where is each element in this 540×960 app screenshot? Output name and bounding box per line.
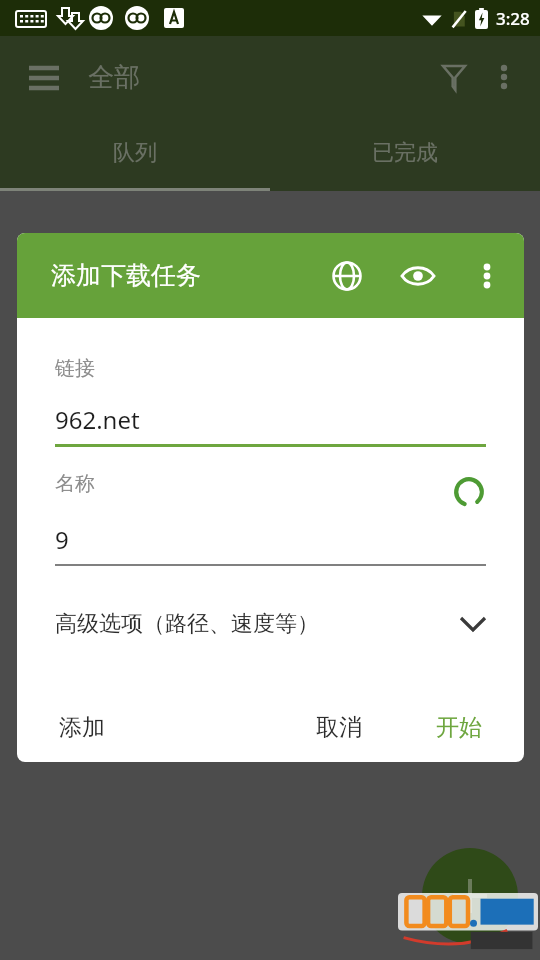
button[interactable]: 962.net <box>55 403 486 447</box>
button[interactable]: 添加 <box>43 703 121 752</box>
button[interactable]: Filter <box>428 51 480 103</box>
staticText: 高级选项（路径、速度等） <box>55 610 319 638</box>
button[interactable]: 开始 <box>420 703 498 752</box>
button[interactable]: 9 <box>55 523 486 566</box>
button[interactable]: 队列 <box>0 118 270 188</box>
staticText: 取消 <box>316 713 362 742</box>
staticText: 名称 <box>55 471 95 496</box>
staticText: 开始 <box>436 713 482 742</box>
button[interactable]: Add download <box>422 848 518 944</box>
staticText: 链接 <box>55 356 95 381</box>
button[interactable]: 取消 <box>300 703 378 752</box>
staticText: 3:28 <box>496 7 530 30</box>
button[interactable]: 已完成 <box>270 118 540 188</box>
staticText: 添加下载任务 <box>51 260 201 291</box>
staticText: 添加 <box>59 713 105 742</box>
button[interactable]: More options <box>480 53 528 101</box>
button[interactable]: Preview <box>393 251 443 301</box>
staticText: 全部 <box>88 61 140 94</box>
button[interactable]: 高级选项（路径、速度等） <box>55 602 486 646</box>
button[interactable]: Browser <box>322 251 372 301</box>
staticText: 已完成 <box>372 139 438 167</box>
button[interactable]: More options <box>464 253 510 299</box>
staticText: 9 <box>55 523 69 556</box>
staticText: 962.net <box>55 403 140 436</box>
button[interactable]: Menu <box>22 55 66 99</box>
staticText: 队列 <box>113 139 157 167</box>
